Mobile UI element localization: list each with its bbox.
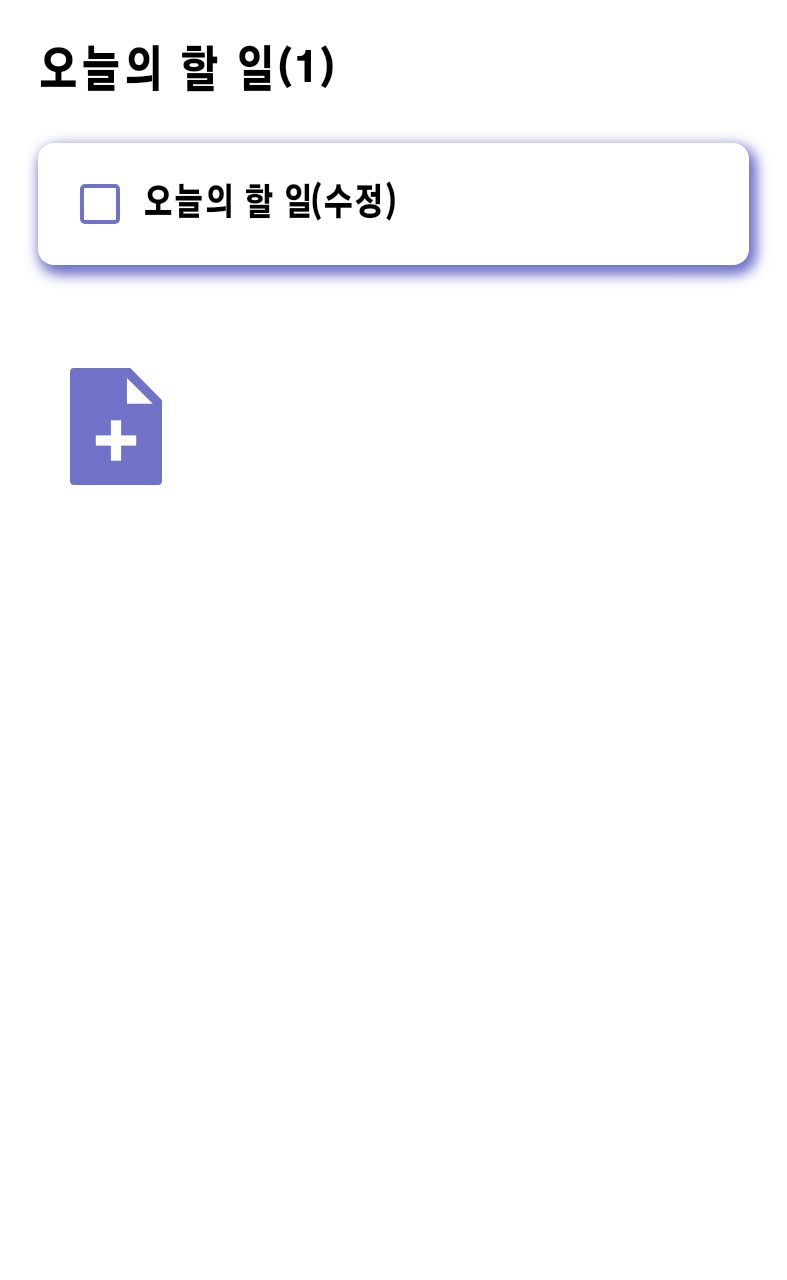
button[interactable]: Add task	[70, 368, 162, 485]
staticText: (수정)	[309, 186, 399, 222]
button[interactable]: Toggle task complete	[80, 184, 120, 224]
staticText: (1)	[275, 50, 339, 90]
staticText: 오늘의 할 일	[39, 49, 279, 97]
button[interactable]: Toggle task complete	[38, 143, 749, 265]
staticText: 오늘의 할 일	[144, 186, 314, 222]
